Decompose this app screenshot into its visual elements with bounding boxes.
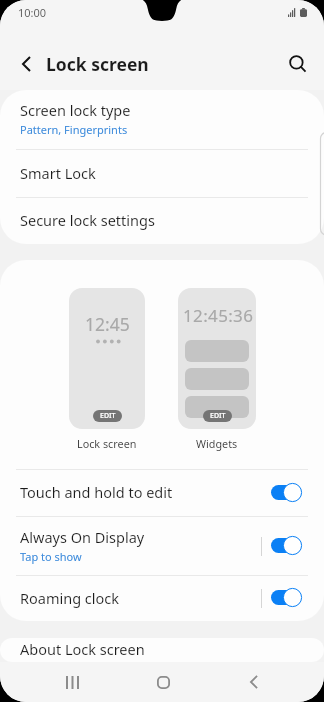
button[interactable]: Search (277, 43, 319, 85)
button[interactable]: Secure lock settings (0, 198, 324, 244)
button[interactable]: About Lock screen (0, 638, 324, 662)
button[interactable]: Roaming clock (0, 576, 324, 621)
staticText: Lock screen (46, 52, 149, 76)
button[interactable]: Smart Lock (0, 150, 324, 197)
staticText: Smart Lock (20, 163, 96, 183)
button[interactable]: Always On Display (0, 517, 324, 575)
button[interactable]: Recent apps (44, 662, 100, 702)
button[interactable]: Back (226, 662, 282, 702)
button[interactable]: Toggle on (271, 536, 302, 555)
button[interactable]: Navigate up (5, 43, 47, 85)
button[interactable]: EDIT (93, 410, 122, 422)
button[interactable]: EDIT (203, 410, 232, 422)
staticText: 12:45 (85, 312, 130, 336)
staticText: Tap to show (20, 549, 82, 564)
staticText: Secure lock settings (20, 210, 155, 230)
button[interactable]: Toggle on (271, 483, 302, 502)
staticText: Lock screen (77, 436, 137, 451)
staticText: Roaming clock (20, 588, 120, 608)
staticText: Always On Display (20, 527, 145, 547)
staticText: EDIT (100, 411, 116, 421)
button[interactable]: Lock screen preview (69, 288, 145, 429)
staticText: 10:00 (18, 5, 47, 20)
staticText: Screen lock type (20, 100, 131, 120)
staticText: EDIT (210, 411, 226, 421)
button[interactable]: Screen lock type (0, 90, 324, 149)
staticText: Pattern, Fingerprints (20, 122, 128, 137)
button[interactable]: Toggle on (271, 588, 302, 607)
staticText: About Lock screen (20, 639, 145, 659)
button[interactable]: Touch and hold to edit (0, 470, 324, 516)
staticText: 12:45:36 (183, 304, 254, 327)
staticText: Touch and hold to edit (20, 482, 173, 502)
button[interactable]: Widgets preview (178, 288, 256, 429)
button[interactable]: Home (135, 662, 191, 702)
staticText: Widgets (196, 436, 238, 451)
